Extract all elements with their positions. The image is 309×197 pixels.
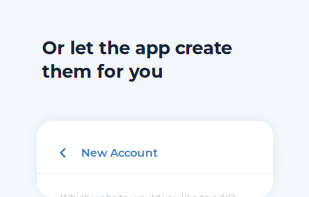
staticText: Or let the app create — [42, 37, 232, 59]
staticText: them for you — [42, 61, 163, 82]
staticText: New Account — [81, 146, 158, 160]
button[interactable]: New Account — [37, 121, 273, 173]
staticText: Which website would you like to add? — [60, 192, 235, 197]
